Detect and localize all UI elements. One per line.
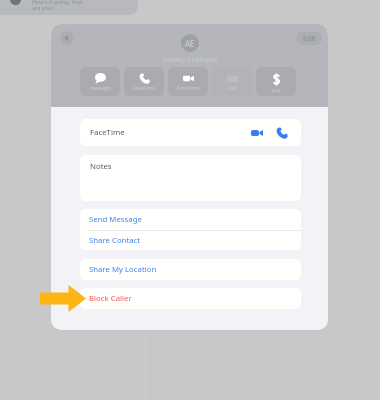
button[interactable]: FaceTime xyxy=(80,119,301,146)
button[interactable]: FaceTime audio xyxy=(276,127,288,139)
button[interactable]: Send Message xyxy=(80,209,301,230)
button[interactable]: Block Caller xyxy=(80,288,301,309)
button[interactable]: Back xyxy=(60,31,74,45)
button[interactable]: Share Contact xyxy=(80,230,301,250)
staticText: Send Message xyxy=(89,214,142,225)
button[interactable]: Notes xyxy=(80,155,301,201)
staticText: FaceTime xyxy=(177,85,200,92)
button[interactable]: Block Caller xyxy=(80,288,301,309)
button[interactable]: Send Message xyxy=(80,209,301,250)
staticText: Notes xyxy=(90,161,112,172)
button[interactable]: message xyxy=(80,67,120,96)
button[interactable]: Share My Location xyxy=(80,259,301,280)
staticText: Share Contact xyxy=(89,235,141,246)
button[interactable]: Edit xyxy=(296,32,322,45)
staticText: FaceTime xyxy=(133,85,156,92)
button[interactable]: FaceTime xyxy=(124,67,164,96)
staticText: message xyxy=(90,85,111,92)
staticText: Share My Location xyxy=(89,264,157,275)
staticText: AE xyxy=(185,38,195,49)
staticText: Block Caller xyxy=(89,293,132,304)
staticText: Edit xyxy=(303,34,316,44)
staticText: FaceTime xyxy=(90,127,125,138)
staticText: mail xyxy=(227,85,238,92)
staticText: pay xyxy=(272,87,281,94)
staticText: Ashley Example xyxy=(162,54,218,64)
button[interactable]: FaceTime video xyxy=(251,127,263,139)
button[interactable]: pay xyxy=(256,67,296,96)
button[interactable]: FaceTime xyxy=(168,67,208,96)
staticText: How's it going, how are you? xyxy=(32,0,83,12)
button[interactable]: Share My Location xyxy=(80,259,301,280)
